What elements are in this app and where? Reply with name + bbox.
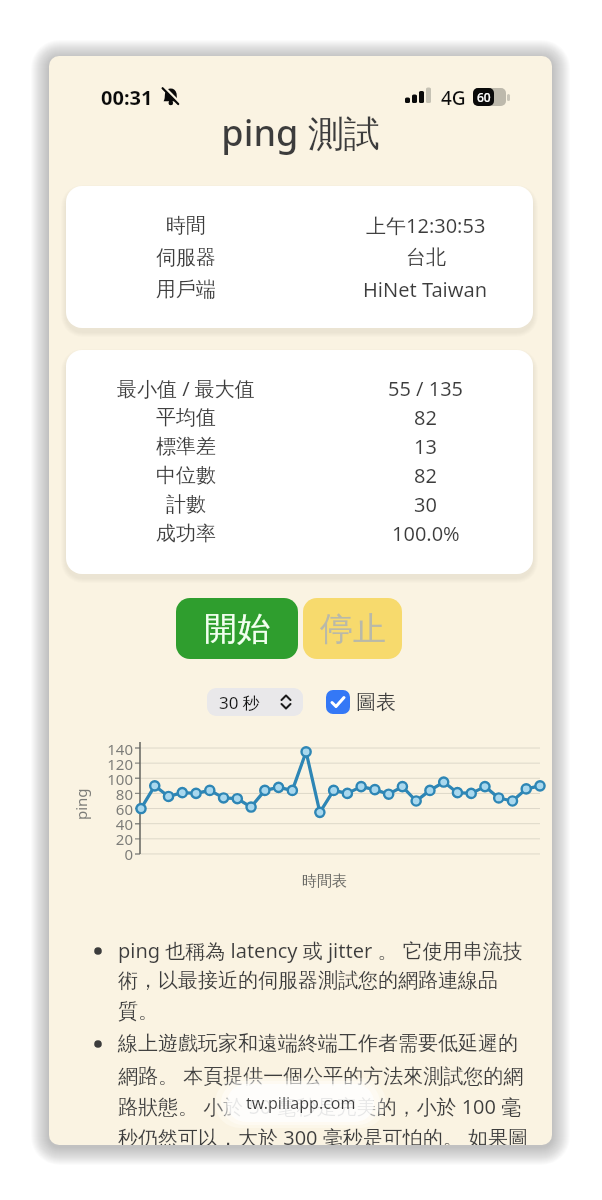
button[interactable]: 30 秒 [207,688,303,716]
staticText: ping 也稱為 latency 或 jitter 。 它使用串流技 [118,937,523,964]
staticText: HiNet Taiwan [363,276,488,303]
staticText: 中位數 [156,463,216,488]
staticText: 伺服器 [156,245,216,270]
staticText: ping [71,788,91,820]
staticText: 82 [414,404,437,431]
staticText: 線上遊戲玩家和遠端終端工作者需要低延遲的 [118,1031,518,1056]
staticText: 60 [97,799,133,819]
staticText: 秒仍然可以，大於 300 毫秒是可怕的。 如果圖 [118,1124,528,1145]
button[interactable]: 停止 [303,598,402,659]
staticText: 20 [97,829,133,849]
staticText: 100 [97,769,133,789]
staticText: ping 測試 [49,108,552,157]
staticText: 圖表 [356,690,396,715]
staticText: 30 [414,491,437,518]
staticText: 140 [97,739,133,759]
staticText: 時間 [166,213,206,238]
staticText: 計數 [166,492,206,517]
staticText: tw.piliapp.com [246,1092,356,1114]
staticText: 時間表 [302,872,347,891]
staticText: 平均值 [156,405,216,430]
staticText: 開始 [204,608,270,650]
staticText: 停止 [320,608,386,650]
staticText: 0 [97,844,133,864]
button[interactable]: 開始 [176,598,298,659]
staticText: 00:31 [101,84,153,111]
staticText: 標準差 [156,434,216,459]
staticText: 60 [477,89,491,105]
staticText: 30 秒 [219,691,260,714]
staticText: 路狀態。 小於 50 毫秒是完美的，小於 100 毫 [118,1093,522,1120]
staticText: 13 [414,433,437,460]
staticText: 120 [97,754,133,774]
staticText: 網路。 本頁提供一個公平的方法來測試您的網 [118,1062,524,1089]
staticText: 用戶端 [156,277,216,302]
staticText: 台北 [406,245,446,270]
button[interactable]: 圖表 [326,688,396,716]
staticText: 上午12:30:53 [366,212,486,239]
staticText: 4G [441,85,466,111]
staticText: 82 [414,462,437,489]
staticText: 40 [97,814,133,834]
staticText: 55 / 135 [388,375,464,402]
staticText: 最小值 / 最大值 [117,375,255,402]
staticText: 成功率 [156,521,216,546]
staticText: 質。 [118,999,158,1024]
staticText: 100.0% [392,520,460,547]
staticText: 80 [97,784,133,804]
staticText: 術，以最接近的伺服器測試您的網路連線品 [118,968,498,993]
